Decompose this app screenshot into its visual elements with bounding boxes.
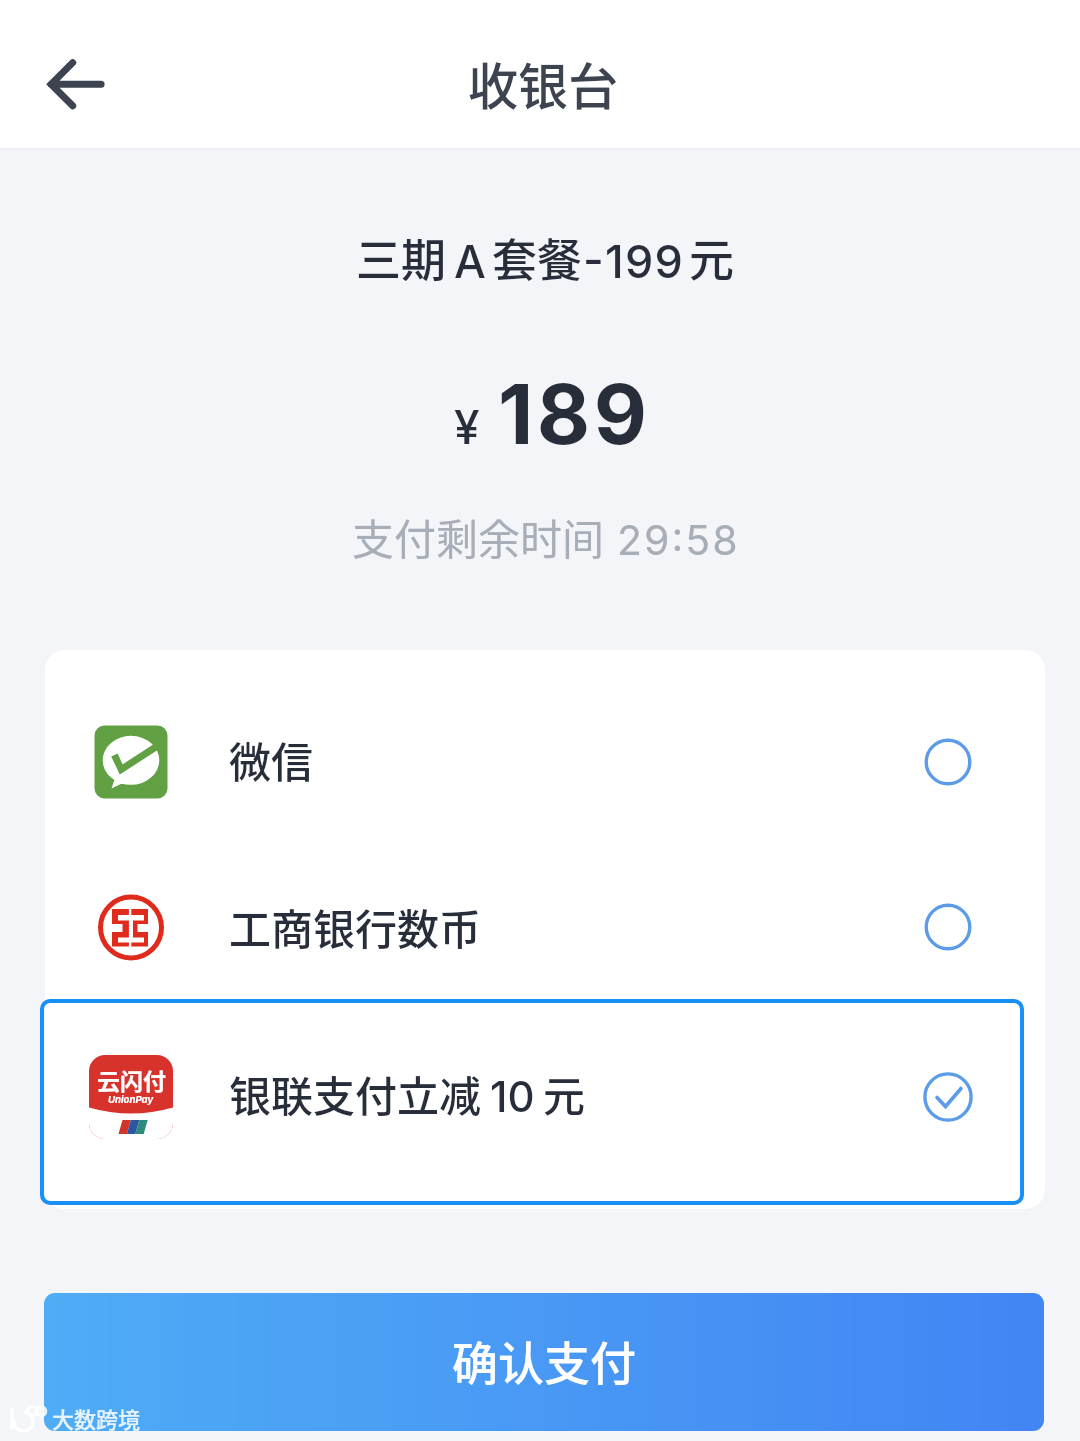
staticText: 银联支付立减 bbox=[229, 1063, 482, 1124]
staticText: 三期 bbox=[356, 225, 447, 290]
button[interactable]: 云闪付 bbox=[45, 1013, 1045, 1181]
staticText: 元 bbox=[689, 225, 735, 290]
staticText: 189 bbox=[498, 365, 651, 457]
staticText: ¥ bbox=[454, 399, 480, 455]
staticText: 云闪付 bbox=[97, 1063, 166, 1096]
staticText: 10 bbox=[490, 1071, 535, 1122]
staticText: -199 bbox=[583, 234, 684, 288]
staticText: 29:58 bbox=[617, 515, 740, 565]
staticText: 套餐 bbox=[492, 225, 583, 290]
staticText: UnionPay bbox=[108, 1094, 154, 1106]
staticText: A bbox=[454, 234, 486, 288]
staticText: 大数跨境 bbox=[52, 1402, 141, 1434]
staticText: 元 bbox=[543, 1063, 586, 1124]
button[interactable] bbox=[45, 678, 1045, 846]
staticText: 支付剩余时间 bbox=[352, 506, 605, 567]
staticText: 确认支付 bbox=[452, 1327, 636, 1394]
button[interactable]: 确认支付 bbox=[44, 1293, 1044, 1431]
button[interactable]: Back bbox=[24, 34, 128, 138]
staticText: 收银台 bbox=[468, 47, 618, 119]
staticText: 微信 bbox=[229, 729, 314, 790]
button[interactable] bbox=[45, 843, 1045, 1011]
staticText: 工商银行数币 bbox=[229, 896, 482, 957]
